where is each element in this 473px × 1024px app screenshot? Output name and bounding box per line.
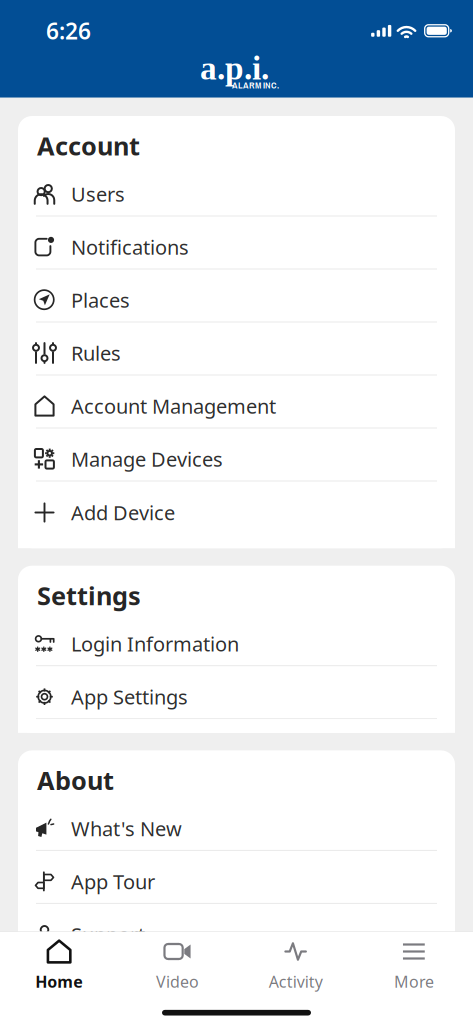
button[interactable]: App Settings: [18, 666, 455, 719]
button[interactable]: More: [355, 932, 473, 1000]
button[interactable]: Users: [18, 163, 455, 216]
button[interactable]: Rules: [18, 322, 455, 375]
button[interactable]: App Tour: [18, 851, 455, 904]
button[interactable]: Home: [0, 932, 118, 1000]
staticText: What's New: [71, 815, 182, 842]
button[interactable]: Video: [118, 932, 236, 1000]
button[interactable]: Places: [18, 269, 455, 322]
staticText: Places: [71, 287, 130, 313]
button[interactable]: Activity: [236, 932, 355, 1000]
staticText: Rules: [71, 340, 121, 366]
staticText: Users: [71, 181, 125, 207]
staticText: 6:26: [46, 16, 91, 46]
staticText: Home: [35, 971, 83, 992]
button[interactable]: Login Information: [18, 613, 455, 666]
staticText: App Settings: [71, 683, 188, 710]
button[interactable]: Notifications: [18, 216, 455, 269]
staticText: Account: [37, 129, 140, 162]
staticText: App Tour: [71, 868, 155, 895]
staticText: Activity: [269, 971, 323, 992]
staticText: More: [394, 971, 434, 992]
staticText: Video: [156, 971, 199, 992]
staticText: Support: [71, 921, 145, 948]
button[interactable]: Manage Devices: [18, 428, 455, 481]
button[interactable]: What's New: [18, 798, 455, 851]
staticText: Notifications: [71, 234, 189, 260]
staticText: Manage Devices: [71, 446, 223, 472]
staticText: About: [37, 763, 114, 797]
staticText: Account Management: [71, 393, 276, 419]
button[interactable]: Account Management: [18, 375, 455, 428]
staticText: Settings: [37, 579, 141, 612]
button[interactable]: Support: [18, 904, 455, 957]
staticText: ALARM INC.: [232, 79, 279, 91]
button[interactable]: Add Device: [18, 481, 455, 534]
staticText: Login Information: [71, 630, 239, 657]
staticText: Add Device: [71, 499, 175, 526]
staticText: a.p.i.: [200, 50, 269, 87]
